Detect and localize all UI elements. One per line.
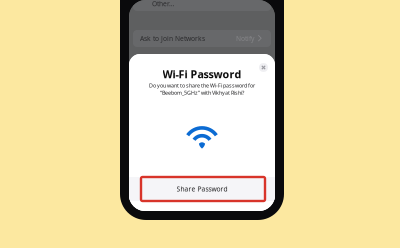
staticText: Do you want to share the Wi-Fi password … xyxy=(149,82,255,89)
staticText: Share Password xyxy=(176,185,227,193)
button[interactable]: Other… xyxy=(133,0,271,11)
button[interactable]: Share Password xyxy=(129,177,275,201)
staticText: “Beebom_5GHz” with Vikhyat Rishi? xyxy=(160,89,244,96)
staticText: Wi-Fi Password xyxy=(162,67,241,81)
staticText: Notify xyxy=(236,34,254,43)
button[interactable]: Close xyxy=(255,59,272,76)
staticText: Other… xyxy=(152,0,174,8)
button[interactable]: Ask to Join Networks xyxy=(133,30,271,47)
staticText: Ask to Join Networks xyxy=(140,34,205,43)
